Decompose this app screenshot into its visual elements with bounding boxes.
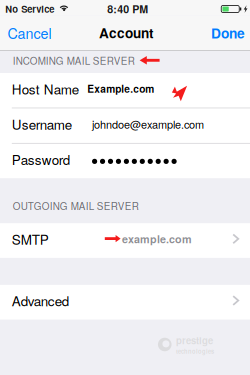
staticText: Host Name <box>12 79 79 98</box>
staticText: example.com <box>122 231 192 247</box>
staticText: 8:40 PM <box>107 1 148 17</box>
staticText: Username <box>12 114 72 134</box>
staticText: johndoe@example.com <box>92 116 204 132</box>
staticText: SMTP <box>12 229 49 248</box>
staticText: Done <box>211 23 245 43</box>
button[interactable]: Cancel <box>0 16 59 50</box>
staticText: Example.com <box>87 81 154 96</box>
button[interactable]: SMTP <box>0 223 250 258</box>
staticText: prestige <box>176 333 213 347</box>
staticText: Password <box>12 149 70 169</box>
staticText: Cancel <box>7 23 51 43</box>
button[interactable]: Done <box>203 16 250 50</box>
button[interactable]: Advanced <box>0 285 250 320</box>
staticText: Advanced <box>12 291 69 310</box>
staticText: Account <box>99 23 154 43</box>
staticText: No Service <box>5 2 54 16</box>
staticText: INCOMING MAIL SERVER <box>13 53 135 68</box>
staticText: technologies <box>176 347 214 355</box>
staticText: OUTGOING MAIL SERVER <box>13 199 139 213</box>
